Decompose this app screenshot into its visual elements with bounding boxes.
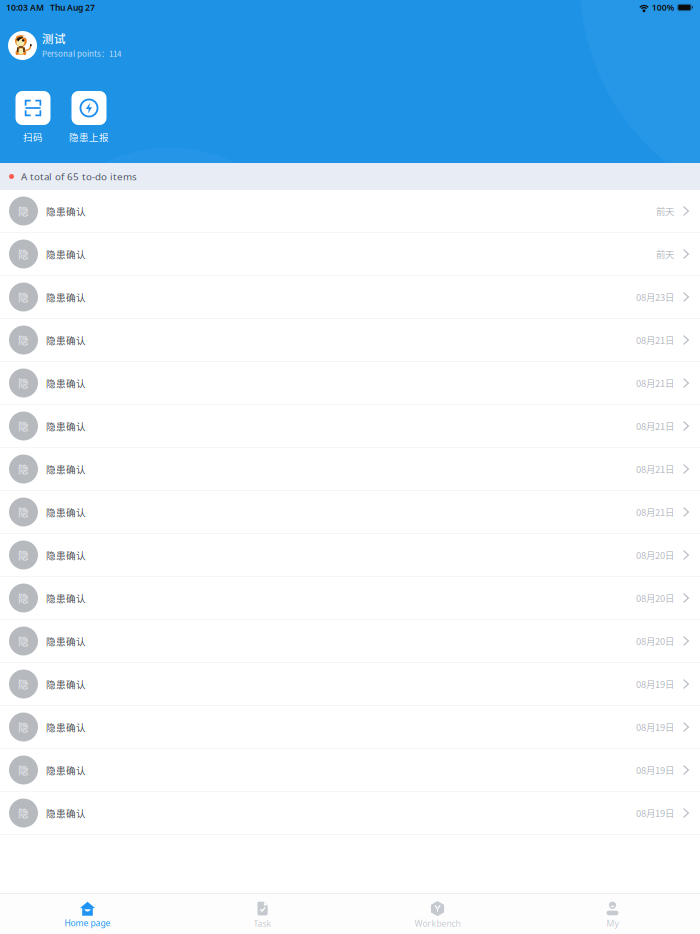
staticText: 扫码 (23, 130, 43, 144)
staticText: 隐 (18, 676, 29, 692)
staticText: 隐患确认 (46, 290, 86, 304)
staticText: 100% (650, 2, 677, 13)
button[interactable]: 隐 (0, 190, 700, 233)
button[interactable]: My (525, 894, 700, 934)
button[interactable]: Workbench (350, 894, 525, 934)
button[interactable]: 隐 (0, 749, 700, 792)
staticText: 08月19日 (636, 677, 674, 691)
staticText: 隐患确认 (46, 419, 86, 433)
staticText: 隐患确认 (46, 763, 86, 777)
staticText: 隐患确认 (46, 505, 86, 519)
staticText: 08月20日 (636, 634, 674, 648)
button[interactable]: 隐 (0, 577, 700, 620)
staticText: 隐患确认 (46, 720, 86, 734)
staticText: 隐 (18, 805, 29, 821)
staticText: 08月19日 (636, 763, 674, 777)
staticText: Home page (64, 917, 110, 929)
staticText: 隐 (18, 289, 29, 305)
staticText: 隐患确认 (46, 591, 86, 605)
button[interactable]: 隐 (0, 706, 700, 749)
button[interactable]: 隐 (0, 534, 700, 577)
staticText: 08月21日 (636, 333, 674, 347)
staticText: 隐患确认 (46, 634, 86, 648)
staticText: A total of 65 to-do items (21, 170, 137, 183)
staticText: 隐 (18, 762, 29, 778)
staticText: Workbench (414, 918, 460, 929)
staticText: 前天 (656, 247, 674, 261)
staticText: 08月23日 (636, 290, 674, 304)
staticText: 隐 (18, 633, 29, 649)
staticText: 08月20日 (636, 548, 674, 562)
button[interactable]: 隐 (0, 362, 700, 405)
staticText: 隐 (18, 461, 29, 477)
button[interactable]: 隐 (0, 233, 700, 276)
staticText: 隐 (18, 719, 29, 735)
staticText: 隐 (18, 504, 29, 520)
button[interactable]: 隐 (0, 491, 700, 534)
staticText: 隐 (18, 332, 29, 348)
staticText: 隐患确认 (46, 247, 86, 261)
button[interactable]: 隐 (0, 405, 700, 448)
staticText: Task (253, 918, 271, 929)
staticText: 隐 (18, 203, 29, 219)
button[interactable]: 隐患上报 (63, 91, 115, 144)
staticText: Personal points：114 (42, 47, 121, 59)
staticText: 08月19日 (636, 806, 674, 820)
button[interactable]: 隐 (0, 448, 700, 491)
button[interactable]: Home page (0, 894, 175, 934)
staticText: 前天 (656, 204, 674, 218)
staticText: 隐患确认 (46, 806, 86, 820)
staticText: 08月21日 (636, 376, 674, 390)
button[interactable]: Task (175, 894, 350, 934)
staticText: 隐患上报 (69, 130, 109, 144)
button[interactable]: 隐 (0, 663, 700, 706)
staticText: 10:03 AM (6, 2, 44, 13)
button[interactable]: 隐 (0, 276, 700, 319)
staticText: 08月19日 (636, 720, 674, 734)
staticText: Thu Aug 27 (44, 2, 95, 13)
staticText: 08月21日 (636, 419, 674, 433)
staticText: 隐患确认 (46, 462, 86, 476)
staticText: 隐 (18, 590, 29, 606)
staticText: 08月21日 (636, 462, 674, 476)
staticText: 隐患确认 (46, 376, 86, 390)
staticText: 08月20日 (636, 591, 674, 605)
button[interactable]: 扫码 (7, 91, 59, 144)
staticText: 隐患确认 (46, 333, 86, 347)
staticText: 测试 (42, 30, 66, 47)
staticText: 隐患确认 (46, 677, 86, 691)
staticText: 隐 (18, 375, 29, 391)
button[interactable]: 隐 (0, 620, 700, 663)
staticText: 隐 (18, 418, 29, 434)
staticText: 隐 (18, 547, 29, 563)
staticText: 隐患确认 (46, 548, 86, 562)
button[interactable]: 隐 (0, 792, 700, 835)
staticText: 隐患确认 (46, 204, 86, 218)
button[interactable]: 隐 (0, 319, 700, 362)
staticText: 隐 (18, 246, 29, 262)
staticText: My (606, 918, 618, 929)
staticText: 08月21日 (636, 505, 674, 519)
